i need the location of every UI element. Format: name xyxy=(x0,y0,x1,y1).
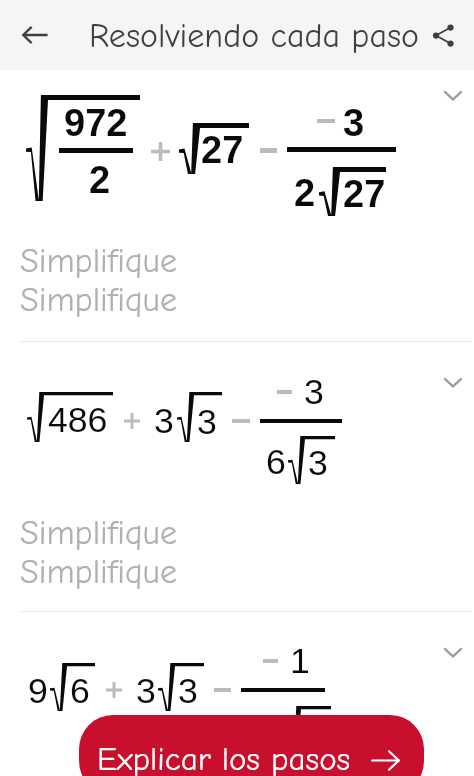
staticText: 3 xyxy=(136,671,156,711)
button[interactable]: Expand step xyxy=(437,79,469,111)
staticText: Resolviendo cada paso xyxy=(89,16,419,55)
staticText: 1 xyxy=(290,641,310,681)
staticText: 486 xyxy=(48,400,108,440)
staticText: 5 xyxy=(304,713,324,753)
staticText: 2 xyxy=(89,159,111,201)
staticText: 2 xyxy=(294,172,316,214)
staticText: Explicar los pasos xyxy=(97,740,351,776)
staticText: 3 xyxy=(154,401,174,441)
staticText: 3 xyxy=(178,671,198,711)
staticText: Simplifique xyxy=(20,280,177,319)
staticText: 3 xyxy=(308,443,328,483)
staticText: 9 xyxy=(28,671,48,711)
staticText: 972 xyxy=(64,102,128,144)
staticText: Simplifique xyxy=(20,552,177,591)
staticText: 6 xyxy=(262,712,282,752)
staticText: 6 xyxy=(266,442,286,482)
staticText: 3 xyxy=(343,102,365,144)
button[interactable]: Explicar los pasos xyxy=(79,715,424,776)
button[interactable]: Expand step xyxy=(437,366,469,398)
staticText: 27 xyxy=(201,129,244,171)
staticText: 27 xyxy=(343,173,386,215)
button[interactable]: Share xyxy=(420,12,466,58)
staticText: Simplifique xyxy=(20,241,177,280)
staticText: 6 xyxy=(70,671,90,711)
staticText: Simplifique xyxy=(20,513,177,552)
staticText: 3 xyxy=(304,372,324,412)
staticText: 3 xyxy=(197,402,217,442)
button[interactable]: Expand step xyxy=(437,636,469,668)
button[interactable]: Back xyxy=(12,12,58,58)
